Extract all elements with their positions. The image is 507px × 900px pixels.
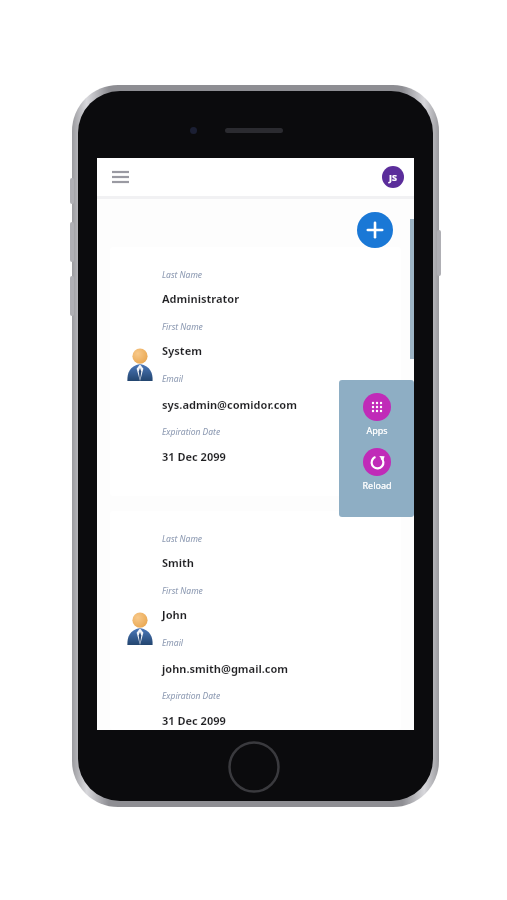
staticText: Email — [162, 373, 184, 385]
staticText: First Name — [162, 585, 203, 597]
staticText: System — [162, 343, 202, 358]
button[interactable]: Reload — [345, 448, 409, 491]
staticText: Expiration Date — [162, 426, 221, 438]
staticText: First Name — [162, 321, 203, 333]
button[interactable]: Apps — [345, 393, 409, 436]
staticText: 31 Dec 2099 — [162, 449, 226, 464]
staticText: Reload — [362, 479, 392, 491]
staticText: Last Name — [162, 533, 203, 545]
staticText: sys.admin@comidor.com — [162, 397, 297, 412]
staticText: Apps — [366, 424, 388, 436]
button[interactable]: Add — [357, 212, 393, 248]
staticText: Administrator — [162, 291, 240, 306]
staticText: JS — [389, 171, 397, 183]
button[interactable]: JS — [382, 166, 404, 188]
button[interactable]: Last Name — [110, 247, 401, 496]
staticText: John — [162, 607, 187, 622]
staticText: john.smith@gmail.com — [162, 661, 289, 676]
button[interactable]: Last Name — [110, 511, 401, 730]
staticText: 31 Dec 2099 — [162, 713, 226, 728]
staticText: Smith — [162, 555, 194, 570]
staticText: Expiration Date — [162, 690, 221, 702]
button[interactable]: Menu — [105, 162, 135, 192]
staticText: Email — [162, 637, 184, 649]
staticText: Last Name — [162, 269, 203, 281]
